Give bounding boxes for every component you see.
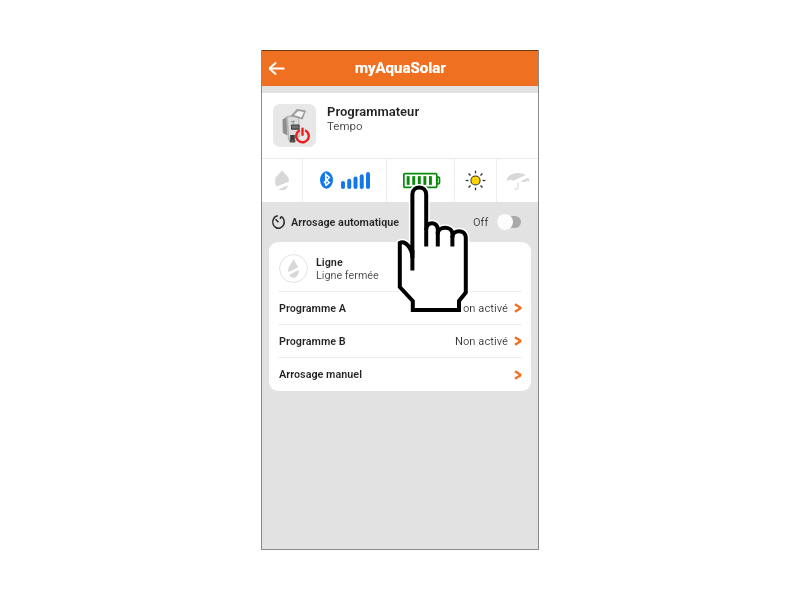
button[interactable]: Programme B: [269, 325, 531, 357]
button[interactable]: Watering off: [261, 158, 302, 202]
button[interactable]: Automatic watering toggle: [497, 214, 521, 230]
other: Sun: [465, 170, 486, 191]
other: Battery level: [403, 173, 439, 188]
button[interactable]: Battery level: [387, 158, 454, 202]
button[interactable]: Programme A: [269, 292, 531, 324]
other: Rain sensor off: [506, 169, 530, 191]
staticText: Arrosage automatique: [291, 216, 400, 229]
staticText: Programme B: [279, 335, 346, 348]
button[interactable]: Timer: [261, 202, 539, 242]
staticText: Ligne: [316, 256, 343, 269]
button[interactable]: Rain sensor off: [497, 158, 539, 202]
button[interactable]: Ligne: [269, 246, 531, 291]
button[interactable]: Sun: [455, 158, 496, 202]
staticText: Non activé: [455, 335, 508, 348]
button[interactable]: [303, 158, 386, 202]
staticText: Ligne fermée: [316, 269, 379, 282]
staticText: Tempo: [327, 119, 363, 132]
staticText: Off: [473, 216, 489, 229]
staticText: Programmateur: [327, 104, 420, 119]
staticText: myAquaSolar: [355, 59, 446, 77]
other: Timer: [272, 215, 285, 229]
button[interactable]: Programmateur: [261, 93, 539, 158]
button[interactable]: Arrosage manuel: [269, 358, 531, 391]
staticText: Programme A: [279, 302, 347, 315]
button[interactable]: Back: [261, 50, 291, 86]
staticText: Arrosage manuel: [279, 368, 363, 381]
other: Watering off: [272, 170, 292, 191]
staticText: Non activé: [455, 302, 508, 315]
